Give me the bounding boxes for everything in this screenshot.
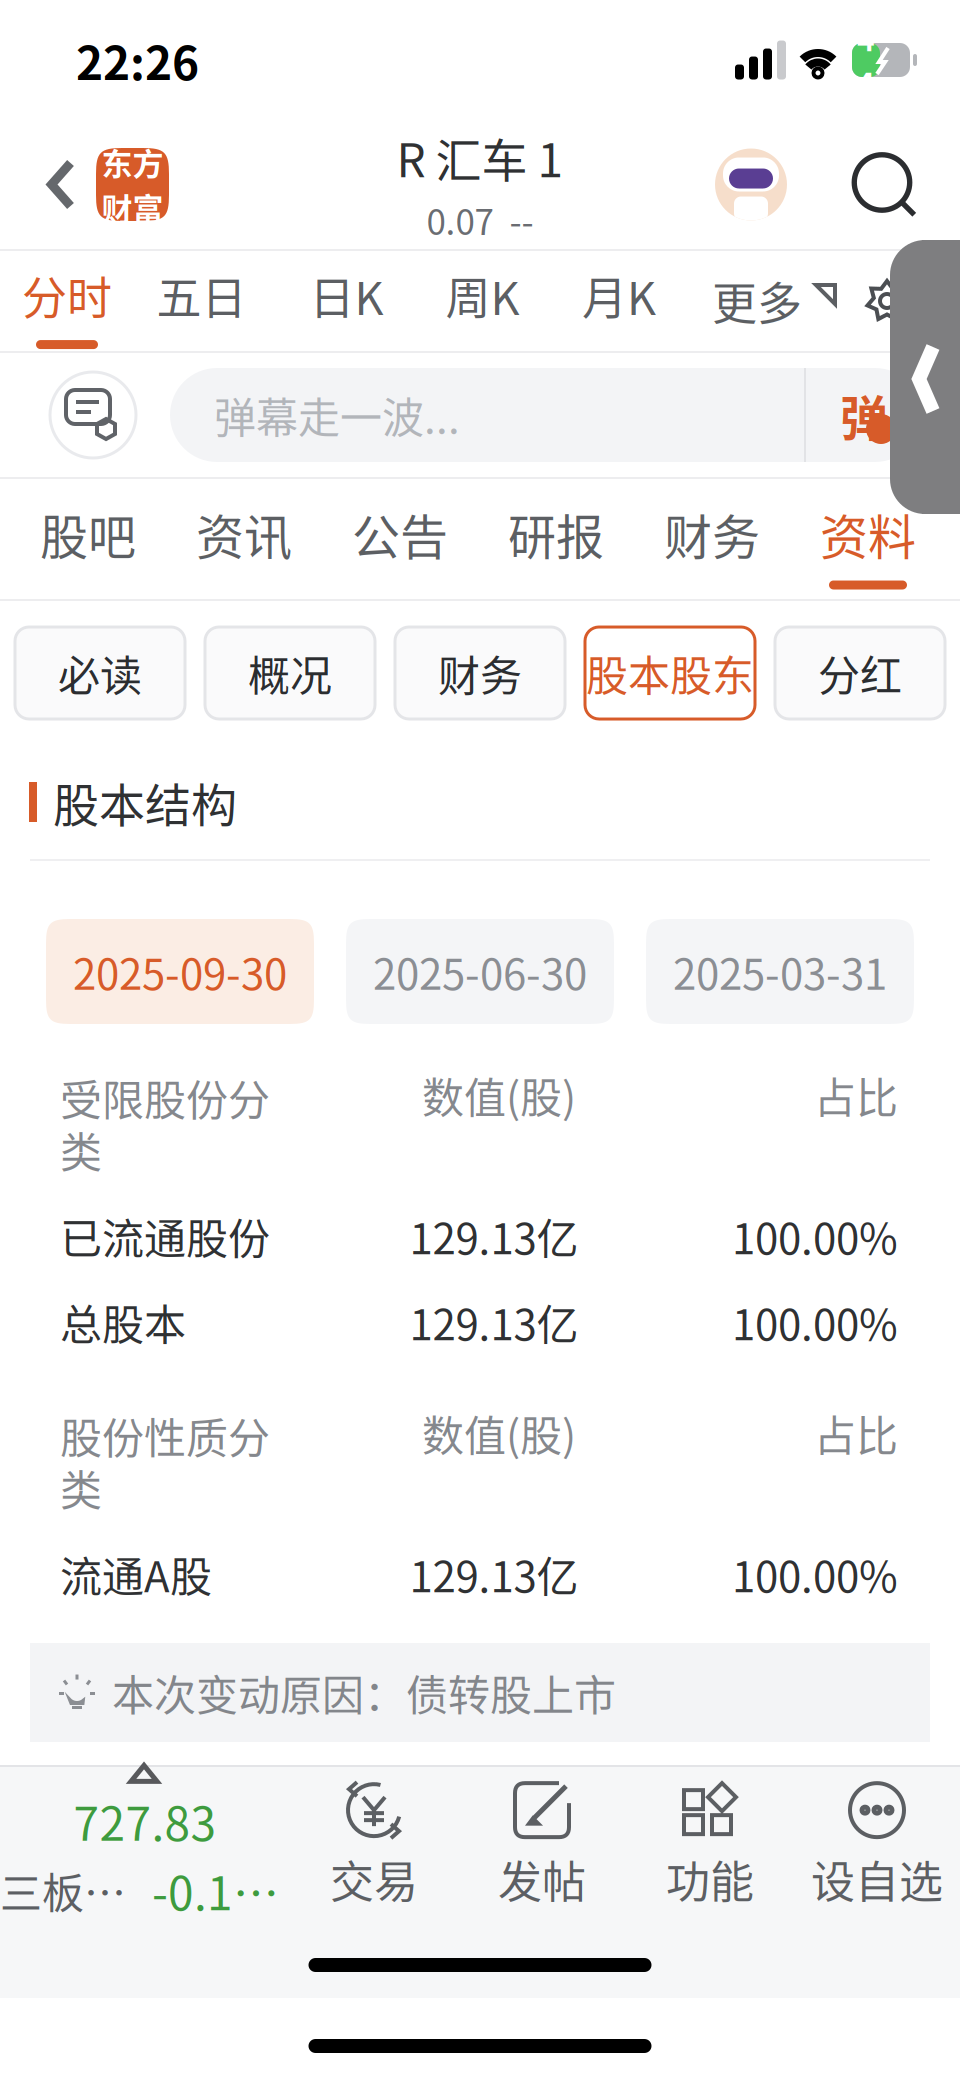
staticText: 月K: [582, 263, 656, 328]
staticText: 数值(股): [422, 1065, 576, 1125]
staticText: 公告: [352, 499, 448, 568]
staticText: 129.13亿: [409, 1292, 578, 1352]
staticText: 财务: [438, 643, 522, 703]
staticText: 功能: [666, 1847, 754, 1911]
button[interactable]: 概况: [205, 627, 375, 719]
staticText: 数值(股): [422, 1403, 576, 1463]
staticText: 东方: [101, 140, 163, 184]
staticText: 分红: [818, 643, 902, 703]
button[interactable]: Send danmu: [806, 368, 922, 462]
staticText: 必读: [58, 643, 142, 703]
button[interactable]: 功能: [626, 1767, 794, 1917]
staticText: 设自选: [811, 1847, 943, 1911]
button[interactable]: 2025-09-30: [46, 919, 314, 1024]
button[interactable]: Assistant: [711, 128, 791, 240]
staticText: 日K: [309, 263, 383, 328]
staticText: 0.07 --: [426, 194, 533, 245]
staticText: 股份性质分: [60, 1405, 270, 1466]
staticText: 股吧: [40, 499, 136, 568]
staticText: 分时: [22, 263, 112, 328]
staticText: 受限股份分: [60, 1067, 270, 1128]
staticText: 100.00%: [732, 1292, 898, 1352]
staticText: -0.13%: [152, 1857, 290, 1924]
staticText: 五日: [156, 263, 246, 328]
staticText: 占比: [814, 1403, 898, 1463]
button[interactable]: Search: [846, 128, 922, 240]
button[interactable]: 研报: [478, 479, 634, 599]
staticText: 资料: [820, 499, 916, 568]
staticText: 总股本: [60, 1292, 186, 1352]
staticText: 类: [60, 1457, 102, 1518]
button[interactable]: Chart settings: [852, 251, 922, 351]
staticText: 727.83: [73, 1787, 216, 1854]
button[interactable]: 股吧: [10, 479, 166, 599]
button[interactable]: East Money home: [96, 148, 169, 221]
staticText: 流通A股: [60, 1544, 212, 1604]
staticText: 财富: [101, 184, 163, 229]
button[interactable]: Back: [26, 128, 96, 240]
button[interactable]: 财务: [395, 627, 565, 719]
staticText: 129.13亿: [409, 1206, 578, 1266]
button[interactable]: 2025-06-30: [346, 919, 614, 1024]
staticText: 股本结构: [53, 769, 237, 835]
staticText: 2025-03-31: [673, 941, 887, 1002]
button[interactable]: 财务: [634, 479, 790, 599]
staticText: 资讯: [196, 499, 292, 568]
staticText: 概况: [248, 643, 332, 703]
button[interactable]: 日K: [269, 251, 424, 351]
staticText: 22:26: [76, 27, 199, 93]
staticText: 本次变动原因：债转股上市: [112, 1662, 616, 1723]
staticText: 已流通股份: [60, 1206, 270, 1266]
staticText: 2025-09-30: [73, 941, 287, 1002]
staticText: 研报: [508, 499, 604, 568]
staticText: 类: [60, 1119, 102, 1180]
button[interactable]: 资讯: [166, 479, 322, 599]
button[interactable]: Collapse panel: [890, 240, 960, 514]
button[interactable]: Danmu history: [50, 372, 136, 458]
staticText: 100.00%: [732, 1544, 898, 1604]
button[interactable]: 更多: [697, 251, 852, 351]
staticText: R 汇车 1: [396, 124, 563, 190]
staticText: 财务: [664, 499, 760, 568]
staticText: 股本股东: [586, 643, 754, 703]
button[interactable]: 弹幕走一波...: [170, 368, 804, 462]
button[interactable]: 必读: [15, 627, 185, 719]
button[interactable]: 五日: [134, 251, 269, 351]
staticText: 弹: [840, 380, 888, 450]
button[interactable]: 公告: [322, 479, 478, 599]
staticText: 2025-06-30: [373, 941, 587, 1002]
staticText: 交易: [330, 1847, 418, 1911]
staticText: 更多: [712, 268, 802, 334]
button[interactable]: 资料: [790, 479, 946, 599]
staticText: 44: [857, 17, 875, 103]
staticText: 129.13亿: [409, 1544, 578, 1604]
staticText: 占比: [814, 1065, 898, 1125]
button[interactable]: 股本股东: [585, 627, 755, 719]
staticText: 周K: [445, 263, 519, 328]
button[interactable]: 交易: [290, 1767, 458, 1917]
button[interactable]: 设自选: [794, 1767, 960, 1917]
button[interactable]: 周K: [424, 251, 541, 351]
button[interactable]: 分时: [0, 251, 134, 351]
staticText: 弹幕走一波...: [214, 385, 460, 445]
button[interactable]: 发帖: [458, 1767, 626, 1917]
button[interactable]: 2025-03-31: [646, 919, 914, 1024]
staticText: 发帖: [498, 1847, 586, 1911]
staticText: 三板成指: [0, 1860, 138, 1921]
button[interactable]: 月K: [541, 251, 697, 351]
staticText: 100.00%: [732, 1206, 898, 1266]
button[interactable]: 分红: [775, 627, 945, 719]
